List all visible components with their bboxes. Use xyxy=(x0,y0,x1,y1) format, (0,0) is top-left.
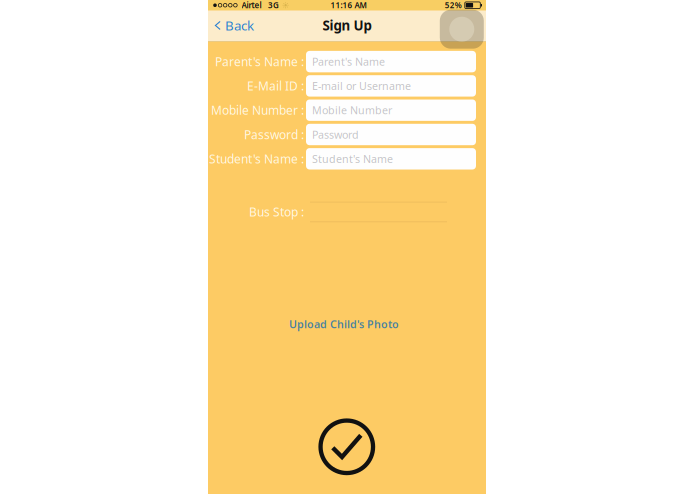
staticText: Back xyxy=(225,17,254,34)
staticText: Upload Child's Photo xyxy=(289,317,399,331)
staticText: Airtel xyxy=(242,0,262,10)
staticText: 11:16 AM xyxy=(330,0,366,10)
staticText: Student's Name : xyxy=(209,151,304,167)
staticText: Password xyxy=(312,127,359,142)
staticText: 52% xyxy=(445,0,462,10)
staticText: 3G xyxy=(268,0,279,10)
button[interactable]: Parent's Name xyxy=(306,51,476,72)
button[interactable]: Mobile Number xyxy=(306,99,476,121)
staticText: Password : xyxy=(244,126,304,142)
button[interactable]: Upload Child's Photo xyxy=(279,311,409,337)
button[interactable]: Password xyxy=(306,124,476,145)
staticText: E-mail or Username xyxy=(312,79,411,93)
staticText: Bus Stop : xyxy=(249,204,304,220)
button[interactable]: E-mail or Username xyxy=(306,75,476,97)
staticText: E-Mail ID : xyxy=(247,78,304,94)
staticText: Sign Up xyxy=(322,17,371,34)
staticText: Mobile Number : xyxy=(211,102,304,118)
staticText: Parent's Name : xyxy=(215,54,304,69)
button[interactable]: Student's Name xyxy=(306,148,476,169)
button[interactable]: Back xyxy=(208,11,262,41)
staticText: Mobile Number xyxy=(312,103,392,117)
staticText: Student's Name xyxy=(312,152,393,166)
button[interactable]: Submit xyxy=(319,419,375,475)
staticText: Parent's Name xyxy=(312,54,385,69)
